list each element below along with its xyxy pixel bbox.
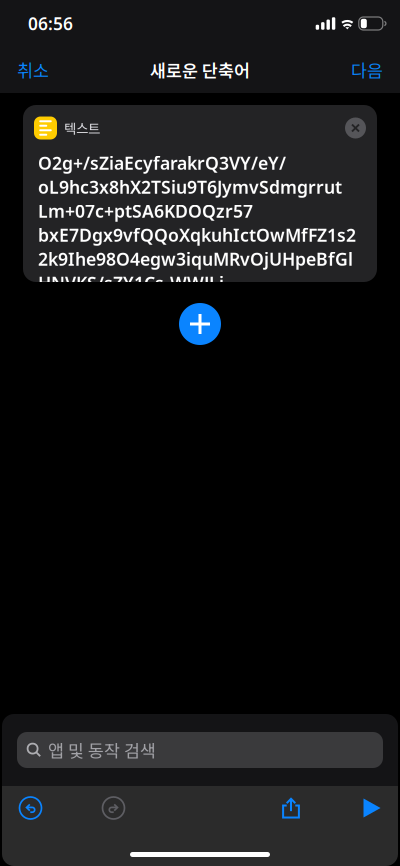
button[interactable]: 취소 — [0, 48, 66, 92]
staticText: 앱 및 동작 검색 — [48, 737, 156, 763]
staticText: 새로운 단축어 — [150, 57, 250, 83]
button[interactable]: Run — [350, 786, 394, 830]
button[interactable]: Undo — [8, 786, 52, 830]
staticText: bxE7Dgx9vfQQoXqkuhIctOwMfFZ1s2 — [38, 223, 356, 247]
button[interactable]: 다음 — [334, 48, 400, 92]
staticText: Lm+07c+ptSA6KDOQzr57 — [38, 199, 253, 223]
staticText: 취소 — [17, 57, 49, 83]
staticText: 06:56 — [28, 12, 73, 35]
staticText: 다음 — [351, 57, 383, 83]
staticText: 2k9Ihe98O4egw3iquMRvOjUHpeBfGl — [38, 247, 353, 271]
button[interactable]: Add action — [179, 303, 221, 345]
button[interactable]: Remove action — [345, 117, 366, 138]
button[interactable]: 앱 및 동작 검색 — [17, 732, 383, 768]
button[interactable]: Redo — [91, 786, 135, 830]
staticText: O2g+/sZiaEcyfarakrQ3VY/eY/ — [38, 151, 286, 175]
staticText: oL9hc3x8hX2TSiu9T6JymvSdmgrrut — [38, 175, 342, 199]
staticText: HNVKS/sZY1Cs-WWJLj — [38, 271, 224, 295]
staticText: 텍스트 — [64, 118, 100, 138]
button[interactable]: Share — [269, 786, 313, 830]
